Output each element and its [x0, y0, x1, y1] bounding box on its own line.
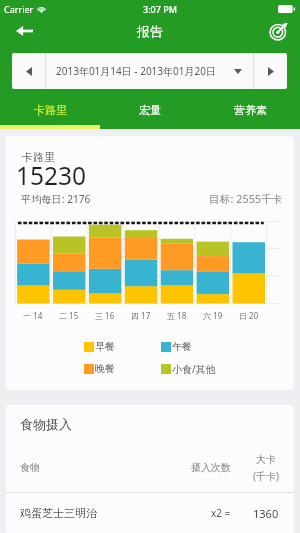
- staticText: 宏量: [139, 103, 161, 117]
- staticText: 晚餐: [95, 362, 115, 375]
- button[interactable]: 营养素: [200, 94, 300, 125]
- staticText: 四 17: [131, 310, 151, 321]
- staticText: 一 14: [23, 310, 43, 321]
- button[interactable]: Previous week: [12, 53, 45, 89]
- staticText: 1360: [253, 506, 279, 521]
- staticText: 摄入次数: [191, 461, 231, 474]
- button[interactable]: Goals: [264, 18, 292, 44]
- staticText: 平均每日: 2176: [21, 192, 91, 206]
- staticText: 15230: [16, 159, 87, 186]
- staticText: 五 18: [167, 310, 187, 321]
- staticText: 鸡蛋芝士三明治: [20, 506, 97, 520]
- staticText: 二 15: [59, 310, 79, 321]
- staticText: x2 =: [211, 506, 231, 520]
- staticText: (千卡): [253, 469, 279, 483]
- staticText: 食物: [20, 461, 40, 474]
- staticText: 午餐: [172, 340, 192, 353]
- staticText: 卡路里: [22, 150, 55, 164]
- staticText: 日 20: [239, 310, 259, 321]
- staticText: 三 16: [95, 310, 115, 321]
- staticText: 3:07 PM: [143, 3, 177, 15]
- button[interactable]: 宏量: [100, 94, 200, 125]
- staticText: 卡路里: [34, 103, 67, 117]
- staticText: 小食/其他: [172, 362, 216, 376]
- staticText: Carrier: [4, 3, 34, 15]
- staticText: 报告: [137, 23, 163, 39]
- staticText: 六 19: [203, 310, 223, 321]
- button[interactable]: Back: [10, 18, 38, 44]
- button[interactable]: 2013年01月14日 - 2013年01月20日: [46, 53, 253, 89]
- button[interactable]: 鸡蛋芝士三明治: [6, 493, 294, 533]
- button[interactable]: Next week: [254, 53, 287, 89]
- staticText: 大卡: [256, 453, 276, 466]
- staticText: 早餐: [95, 340, 115, 353]
- staticText: 2013年01月14日 - 2013年01月20日: [56, 64, 216, 78]
- staticText: 目标: 2555千卡: [209, 191, 283, 206]
- staticText: 食物摄入: [20, 416, 72, 432]
- button[interactable]: 卡路里: [0, 94, 100, 125]
- staticText: 营养素: [234, 103, 267, 117]
